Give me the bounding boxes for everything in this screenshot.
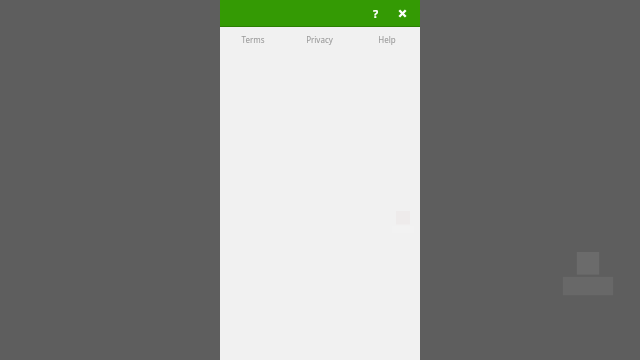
staticText: Help bbox=[378, 34, 396, 45]
button[interactable]: Terms bbox=[220, 27, 286, 51]
button[interactable]: Help bbox=[363, 0, 389, 27]
button[interactable]: Help bbox=[353, 27, 420, 51]
staticText: Privacy bbox=[306, 34, 333, 45]
staticText: Terms bbox=[241, 34, 265, 45]
button[interactable]: Privacy bbox=[286, 27, 353, 51]
button[interactable]: Close bbox=[389, 0, 415, 27]
staticText: ? bbox=[373, 6, 379, 21]
